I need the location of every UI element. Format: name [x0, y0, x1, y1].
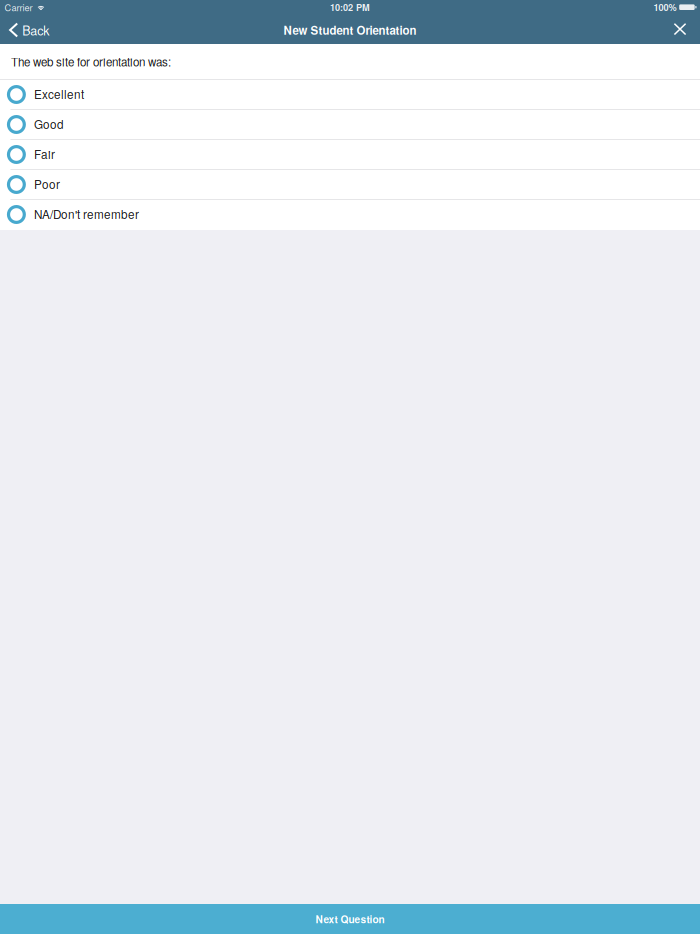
staticText: New Student Orientation [283, 22, 416, 38]
staticText: 100% [654, 1, 677, 14]
button[interactable]: Fair [0, 140, 700, 170]
staticText: Fair [34, 146, 55, 162]
staticText: Next Question [315, 912, 384, 926]
button[interactable]: Good [0, 110, 700, 140]
button[interactable]: Back [0, 16, 59, 44]
button[interactable]: Close [664, 16, 700, 44]
staticText: Excellent [34, 86, 84, 102]
staticText: Carrier [5, 1, 33, 14]
staticText: The web site for orientation was: [11, 53, 171, 70]
staticText: Back [22, 21, 49, 39]
button[interactable]: Next Question [0, 904, 700, 934]
staticText: Good [34, 116, 64, 132]
staticText: 10:02 PM [330, 1, 370, 14]
button[interactable]: Poor [0, 170, 700, 200]
button[interactable]: NA/Don't remember [0, 200, 700, 230]
staticText: NA/Don't remember [34, 206, 139, 222]
button[interactable]: Excellent [0, 80, 700, 110]
staticText: Poor [34, 176, 60, 192]
